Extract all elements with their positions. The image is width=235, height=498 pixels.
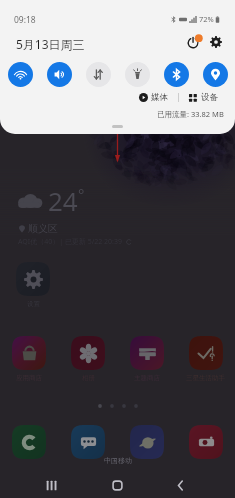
staticText: 设置 [27,300,40,308]
button[interactable]: Settings [208,34,223,49]
button[interactable]: Power off [185,33,202,50]
button[interactable]: 设备 [189,92,218,103]
staticText: 主题商店 [134,374,160,382]
button[interactable]: Sound [47,62,72,87]
staticText: 中国移动 [104,456,132,465]
button[interactable]: Flashlight [125,62,150,87]
staticText: AQI优（40）| 已更新 5/22 20:39 [18,237,123,247]
button[interactable]: Phone [12,425,46,459]
button[interactable]: Wi-Fi [8,62,33,87]
button[interactable]: Messages [71,425,105,459]
staticText: 设备 [201,92,218,103]
button[interactable]: Camera [189,425,223,459]
button[interactable]: Back [166,471,194,498]
button[interactable]: 设置 [16,262,50,308]
staticText: 相册 [82,374,95,382]
button[interactable]: 相册 [71,336,105,382]
button[interactable]: Location [203,62,228,87]
button[interactable]: 三星生活助手 [186,336,225,382]
staticText: 09:18 [14,14,36,26]
staticText: 媒体 [151,92,168,103]
button[interactable]: Internet [130,425,164,459]
staticText: 应用商店 [16,374,42,382]
button[interactable]: Recents [37,471,65,498]
button[interactable]: Bluetooth [164,62,189,87]
button[interactable]: Home [103,471,131,498]
staticText: 5月13日周三 [16,36,85,52]
button[interactable]: Mobile data [86,62,111,87]
button[interactable]: 24 [14,189,128,247]
staticText: 三星生活助手 [186,374,225,382]
staticText: 已用流量: 33.82 MB [157,109,224,119]
button[interactable]: 媒体 [139,92,168,103]
staticText: 顺义区 [28,222,58,235]
staticText: 24 [48,183,78,218]
button[interactable]: 应用商店 [12,336,46,382]
button[interactable]: 主题商店 [130,336,164,382]
staticText: 72% [199,14,214,24]
staticText: ° [78,184,85,204]
